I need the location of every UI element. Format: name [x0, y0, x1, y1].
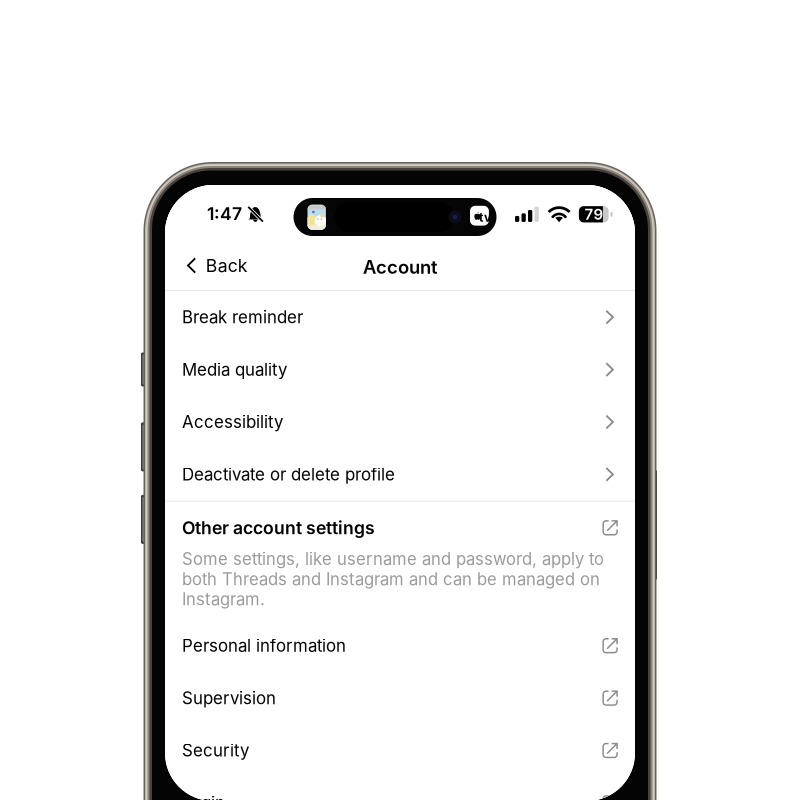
button[interactable]: Break reminder: [165, 291, 635, 343]
staticText: Login: [182, 793, 225, 800]
staticText: Media quality: [182, 359, 287, 380]
button[interactable]: Accessibility: [165, 396, 635, 448]
button[interactable]: Supervision: [165, 672, 635, 724]
staticText: Security: [182, 740, 249, 761]
button[interactable]: Login: [165, 777, 635, 800]
staticText: tv: [479, 210, 491, 225]
button[interactable]: Other account settings: [165, 502, 635, 554]
button[interactable]: Personal information: [165, 619, 635, 672]
staticText: Some settings, like username and passwor…: [182, 549, 604, 609]
staticText: Account: [363, 256, 437, 278]
staticText: Back: [206, 255, 248, 276]
staticText: 1:47: [207, 203, 242, 224]
button[interactable]: Back: [165, 241, 264, 290]
staticText: Accessibility: [182, 412, 283, 432]
staticText: Deactivate or delete profile: [182, 464, 395, 484]
staticText: 79: [584, 205, 603, 223]
button[interactable]: Deactivate or delete profile: [165, 448, 635, 501]
staticText: Supervision: [182, 688, 276, 708]
button[interactable]: Media quality: [165, 343, 635, 396]
button[interactable]: Security: [165, 724, 635, 777]
staticText: Other account settings: [182, 517, 375, 538]
staticText: Personal information: [182, 635, 346, 656]
staticText: Break reminder: [182, 307, 303, 327]
